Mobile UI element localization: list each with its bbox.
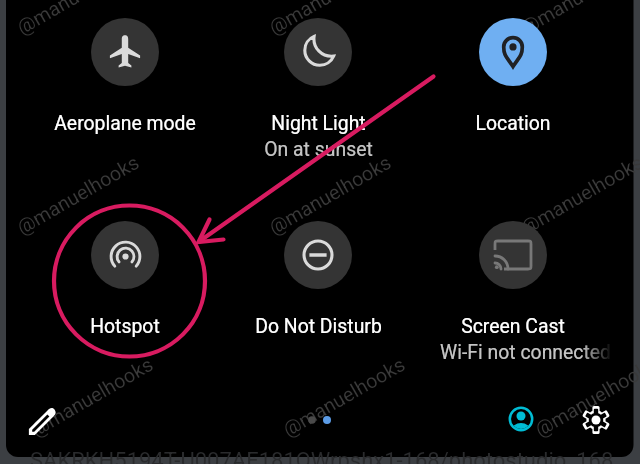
staticText: Screen Cast	[461, 315, 565, 338]
staticText: Wi-Fi not connected	[440, 341, 612, 364]
button[interactable]: Hotspot	[30, 221, 220, 338]
button[interactable]: Night Light	[223, 18, 413, 161]
staticText: Aeroplane mode	[54, 112, 196, 135]
button[interactable]: Do Not Disturb	[223, 221, 413, 338]
staticText: On at sunset	[264, 138, 373, 161]
button[interactable]: Screen Cast	[418, 221, 608, 367]
button[interactable]: User account	[504, 402, 538, 436]
button[interactable]: Location	[418, 18, 608, 135]
staticText: Night Light	[271, 112, 366, 135]
staticText: Hotspot	[90, 315, 160, 338]
button[interactable]: Settings	[579, 403, 613, 437]
button[interactable]: Aeroplane mode	[30, 18, 220, 135]
staticText: Do Not Disturb	[255, 315, 382, 338]
button[interactable]: Edit	[27, 404, 60, 437]
staticText: Location	[475, 112, 551, 135]
